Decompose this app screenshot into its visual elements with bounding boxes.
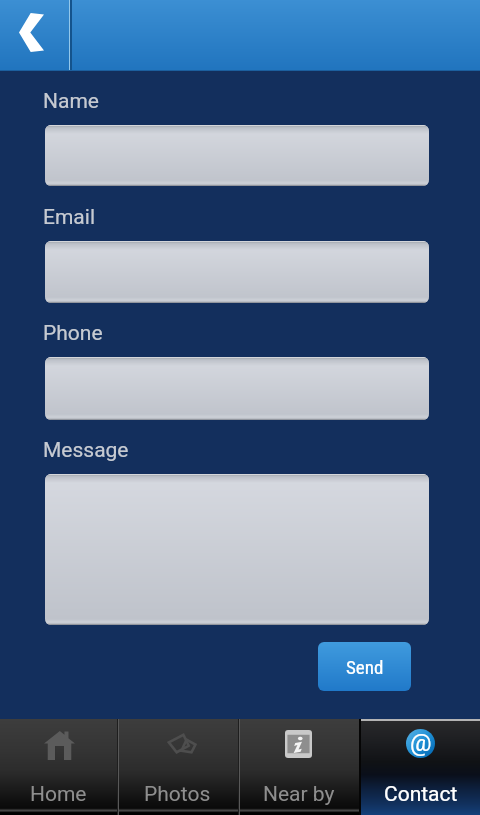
button[interactable]: Back bbox=[0, 0, 69, 71]
button[interactable] bbox=[45, 241, 429, 303]
staticText: Contact bbox=[384, 782, 458, 807]
button[interactable] bbox=[45, 357, 429, 420]
staticText: Message bbox=[43, 438, 129, 463]
staticText: @ bbox=[410, 729, 432, 757]
staticText: Email bbox=[43, 205, 95, 230]
button[interactable] bbox=[45, 474, 429, 625]
button[interactable]: Send bbox=[318, 642, 411, 691]
button[interactable]: Photos bbox=[117, 719, 238, 815]
staticText: Name bbox=[43, 89, 99, 114]
button[interactable]: Home bbox=[0, 719, 117, 815]
staticText: Near by bbox=[263, 782, 335, 807]
button[interactable]: @ bbox=[361, 719, 480, 815]
staticText: Send bbox=[346, 656, 384, 678]
staticText: Home bbox=[30, 782, 87, 807]
staticText: Photos bbox=[144, 782, 211, 807]
button[interactable] bbox=[45, 125, 429, 186]
staticText: Phone bbox=[43, 321, 103, 346]
button[interactable]: Near by bbox=[238, 719, 359, 815]
